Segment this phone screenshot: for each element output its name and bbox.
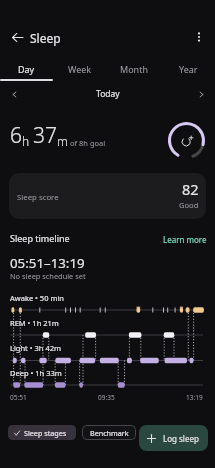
button[interactable]: Sleep score [9, 173, 206, 219]
button[interactable]: Sleep stages [8, 425, 76, 440]
staticText: Day [18, 63, 35, 75]
staticText: Today [96, 88, 120, 100]
staticText: 6 [10, 121, 22, 150]
staticText: Awake • 50 min [10, 293, 64, 303]
button[interactable]: Week [53, 58, 107, 80]
staticText: 13:19 [186, 393, 203, 402]
staticText: Light • 3h 42m [10, 343, 62, 353]
staticText: m [57, 133, 68, 149]
button[interactable]: Previous day [4, 84, 24, 104]
staticText: Log sleep [163, 433, 199, 444]
button[interactable]: Day [0, 58, 53, 80]
staticText: Learn more [163, 234, 207, 245]
staticText: Deep • 1h 33m [10, 368, 62, 378]
staticText: 37 [33, 121, 57, 150]
staticText: h [22, 133, 30, 149]
staticText: Month [120, 63, 148, 75]
button[interactable]: Month [107, 58, 161, 80]
staticText: Week [68, 63, 92, 75]
button[interactable]: Benchmark [82, 425, 136, 440]
staticText: Sleep score [17, 192, 59, 203]
staticText: Year [179, 63, 198, 75]
button[interactable]: Log sleep [139, 425, 208, 451]
staticText: 05:51–13:19 [10, 254, 85, 272]
button[interactable]: Year [161, 58, 215, 80]
button[interactable]: Next day [191, 84, 211, 104]
staticText: of 8h goal [70, 138, 106, 148]
staticText: Good [179, 200, 199, 210]
staticText: No sleep schedule set [10, 271, 86, 281]
staticText: 05:51 [10, 393, 27, 402]
button[interactable]: Learn more [161, 232, 209, 247]
staticText: Sleep timeline [10, 232, 70, 244]
button[interactable]: Back [4, 24, 30, 50]
staticText: Sleep [30, 30, 61, 46]
staticText: Sleep stages [24, 428, 67, 438]
staticText: 09:35 [98, 393, 115, 402]
staticText: REM • 1h 21m [10, 318, 59, 328]
staticText: 82 [182, 179, 199, 199]
staticText: Benchmark [90, 428, 129, 438]
button[interactable]: More options [186, 24, 212, 50]
